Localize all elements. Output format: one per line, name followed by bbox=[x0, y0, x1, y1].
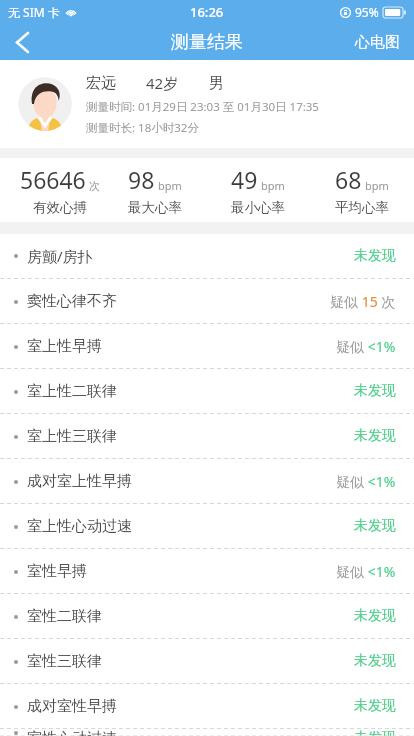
staticText: 95% bbox=[355, 4, 379, 20]
staticText: 未发现 bbox=[354, 729, 396, 736]
staticText: 未发现 bbox=[354, 517, 396, 535]
button[interactable]: 室上性早搏 bbox=[0, 324, 414, 368]
staticText: 心电图 bbox=[355, 33, 400, 52]
staticText: 测量时间: 01月29日 23:03 至 01月30日 17:35 bbox=[86, 99, 319, 115]
staticText: bpm bbox=[261, 178, 285, 193]
button[interactable]: 房颤/房扑 bbox=[0, 234, 414, 278]
staticText: bpm bbox=[365, 178, 389, 193]
staticText: 未发现 bbox=[354, 382, 396, 400]
staticText: 室性心动过速 bbox=[27, 729, 117, 736]
staticText: 68 bbox=[335, 164, 362, 195]
staticText: 疑似 <1% bbox=[336, 337, 396, 356]
staticText: 未发现 bbox=[354, 427, 396, 445]
staticText: 未发现 bbox=[354, 607, 396, 625]
staticText: 宏远 bbox=[86, 74, 116, 93]
button[interactable]: 室上性二联律 bbox=[0, 369, 414, 413]
staticText: 有效心搏 bbox=[33, 199, 87, 216]
button[interactable]: 室上性三联律 bbox=[0, 414, 414, 458]
staticText: 室性三联律 bbox=[27, 652, 102, 671]
staticText: 未发现 bbox=[354, 697, 396, 715]
staticText: 测量结果 bbox=[171, 31, 243, 54]
staticText: bpm bbox=[158, 178, 182, 193]
staticText: 无 SIM 卡 bbox=[8, 4, 60, 20]
staticText: 疑似 15 次 bbox=[330, 292, 396, 311]
staticText: 42岁 bbox=[146, 73, 179, 93]
staticText: 室上性三联律 bbox=[27, 427, 117, 446]
staticText: 室上性二联律 bbox=[27, 382, 117, 401]
staticText: 室性早搏 bbox=[27, 562, 87, 581]
staticText: 次 bbox=[89, 179, 100, 193]
staticText: 最大心率 bbox=[128, 199, 182, 216]
button[interactable]: 返回 bbox=[0, 24, 44, 60]
staticText: 98 bbox=[128, 164, 155, 195]
staticText: 测量时长: 18小时32分 bbox=[86, 120, 199, 136]
staticText: 平均心率 bbox=[335, 199, 389, 216]
staticText: 未发现 bbox=[354, 247, 396, 265]
staticText: 窦性心律不齐 bbox=[27, 292, 117, 311]
staticText: 室上性心动过速 bbox=[27, 517, 132, 536]
button[interactable]: 室性二联律 bbox=[0, 594, 414, 638]
staticText: 室性二联律 bbox=[27, 607, 102, 626]
button[interactable]: 成对室上性早搏 bbox=[0, 459, 414, 503]
staticText: 未发现 bbox=[354, 652, 396, 670]
button[interactable]: 窦性心律不齐 bbox=[0, 279, 414, 323]
button[interactable]: 室上性心动过速 bbox=[0, 504, 414, 548]
staticText: 最小心率 bbox=[231, 199, 285, 216]
staticText: 房颤/房扑 bbox=[27, 246, 93, 266]
staticText: 16:26 bbox=[190, 3, 224, 21]
staticText: 疑似 <1% bbox=[336, 562, 396, 581]
button[interactable]: 室性三联律 bbox=[0, 639, 414, 683]
staticText: 疑似 <1% bbox=[336, 472, 396, 491]
staticText: 成对室上性早搏 bbox=[27, 472, 132, 491]
button[interactable]: 室性早搏 bbox=[0, 549, 414, 593]
button[interactable]: 心电图 bbox=[341, 24, 414, 60]
staticText: 56646 bbox=[20, 164, 86, 195]
staticText: 成对室性早搏 bbox=[27, 697, 117, 716]
button[interactable]: 室性心动过速 bbox=[0, 729, 414, 736]
staticText: 男 bbox=[209, 74, 224, 93]
staticText: 室上性早搏 bbox=[27, 337, 102, 356]
staticText: 49 bbox=[231, 164, 258, 195]
button[interactable]: 成对室性早搏 bbox=[0, 684, 414, 728]
